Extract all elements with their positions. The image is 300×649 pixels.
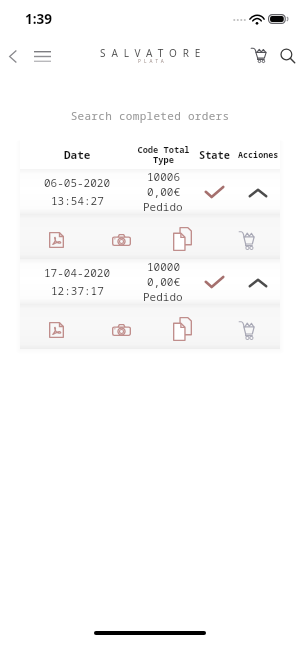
button[interactable]: Photos — [85, 214, 150, 259]
button[interactable]: Collapse row — [236, 259, 280, 304]
staticText: Code Total Type — [137, 144, 190, 165]
staticText: State — [199, 148, 230, 162]
staticText: PLATA — [138, 58, 167, 64]
staticText: 12:37:17 — [51, 283, 104, 298]
button[interactable]: Copy — [150, 304, 215, 349]
staticText: 0,00€ — [147, 184, 180, 199]
button[interactable]: Reorder — [215, 304, 280, 349]
button[interactable]: Menu — [29, 43, 55, 69]
staticText: 10006 — [147, 169, 180, 184]
staticText: Pedido — [143, 199, 183, 214]
staticText: 0,00€ — [147, 274, 180, 289]
button[interactable]: Back — [0, 43, 26, 69]
button[interactable]: Reorder — [215, 214, 280, 259]
button[interactable]: Download PDF — [20, 304, 85, 349]
button[interactable]: Download PDF — [20, 214, 85, 259]
staticText: Pedido — [143, 289, 183, 304]
staticText: 13:54:27 — [51, 193, 104, 208]
staticText: 1:39 — [25, 10, 52, 28]
button[interactable]: Photos — [85, 304, 150, 349]
staticText: Date — [64, 147, 91, 162]
button[interactable]: Shopping cart — [244, 42, 270, 68]
staticText: 06-05-2020 — [44, 175, 110, 190]
button[interactable]: Search — [274, 42, 300, 68]
staticText: Acciones — [238, 149, 279, 160]
button[interactable]: Copy — [150, 214, 215, 259]
staticText: 10000 — [147, 259, 180, 274]
staticText: SALVATORE — [100, 46, 207, 60]
staticText: Search completed orders — [0, 108, 300, 123]
button[interactable]: Collapse row — [236, 169, 280, 214]
staticText: 17-04-2020 — [44, 265, 110, 280]
